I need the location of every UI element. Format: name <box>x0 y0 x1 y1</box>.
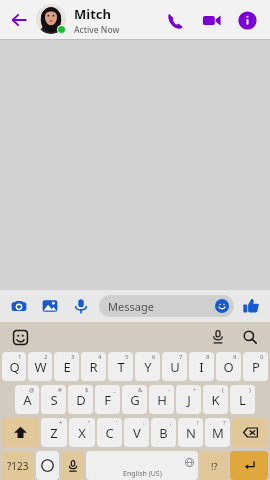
staticText: B <box>159 424 168 442</box>
staticText: ' <box>116 419 118 427</box>
button[interactable]: E <box>54 352 79 381</box>
staticText: 8 <box>206 353 210 361</box>
staticText: 1 <box>18 353 22 361</box>
staticText: ? <box>223 419 226 427</box>
staticText: ) <box>249 386 251 394</box>
staticText: X <box>78 424 86 442</box>
staticText: " <box>88 419 91 427</box>
button[interactable]: L <box>230 385 255 414</box>
button[interactable]: Shift <box>2 418 39 447</box>
staticText: T <box>117 358 125 376</box>
staticText: I <box>199 358 204 376</box>
staticText: + <box>193 386 197 394</box>
button[interactable]: G <box>122 385 147 414</box>
button[interactable]: S <box>41 385 66 414</box>
button[interactable]: Voice message <box>69 294 93 318</box>
button[interactable]: Profile photo <box>36 4 68 36</box>
button[interactable]: Info <box>232 5 262 35</box>
staticText: - <box>168 386 170 394</box>
button[interactable]: N <box>178 418 203 447</box>
staticText: 6 <box>152 353 156 361</box>
button[interactable]: C <box>97 418 122 447</box>
button[interactable]: Call <box>160 5 190 35</box>
staticText: 4 <box>98 353 102 361</box>
button[interactable]: H <box>149 385 174 414</box>
staticText: ( <box>222 386 224 394</box>
button[interactable]: J <box>176 385 201 414</box>
button[interactable]: T <box>108 352 133 381</box>
staticText: ! <box>197 419 199 427</box>
button[interactable]: Q <box>2 352 26 381</box>
button[interactable]: Stickers <box>9 326 31 348</box>
button[interactable]: !? <box>200 451 228 480</box>
button[interactable]: Camera <box>7 294 31 318</box>
staticText: R <box>89 358 98 376</box>
button[interactable]: B <box>151 418 176 447</box>
button[interactable]: Message <box>99 295 234 317</box>
button[interactable]: Gallery <box>38 294 62 318</box>
staticText: Q <box>9 358 20 376</box>
staticText: ; <box>170 419 172 427</box>
button[interactable]: D <box>68 385 93 414</box>
staticText: F <box>104 391 111 409</box>
button[interactable]: U <box>162 352 187 381</box>
staticText: U <box>170 358 180 376</box>
button[interactable]: I <box>189 352 214 381</box>
button[interactable]: P <box>243 352 268 381</box>
button[interactable]: Like <box>239 294 263 318</box>
staticText: C <box>105 424 114 442</box>
button[interactable]: Back <box>6 7 32 33</box>
staticText: O <box>223 358 234 376</box>
staticText: D <box>76 391 86 409</box>
staticText: S <box>50 391 58 409</box>
button[interactable]: R <box>81 352 106 381</box>
button[interactable]: Y <box>135 352 160 381</box>
staticText: & <box>138 386 143 394</box>
staticText: English (US) <box>123 469 162 479</box>
staticText: G <box>130 391 140 409</box>
button[interactable]: V <box>124 418 149 447</box>
button[interactable]: Emoji <box>36 451 59 480</box>
staticText: Z <box>50 424 58 442</box>
button[interactable]: Mitch <box>74 5 160 36</box>
staticText: A <box>23 391 32 409</box>
button[interactable]: Send <box>230 451 268 480</box>
button[interactable]: K <box>203 385 228 414</box>
staticText: _ <box>113 386 116 394</box>
button[interactable]: A <box>15 385 39 414</box>
staticText: @ <box>29 386 35 394</box>
staticText: Mitch <box>74 5 111 23</box>
staticText: P <box>252 358 260 376</box>
staticText: H <box>157 391 167 409</box>
button[interactable]: ?123 <box>2 451 34 480</box>
staticText: * <box>59 419 63 427</box>
button[interactable]: W <box>28 352 52 381</box>
staticText: M <box>212 424 224 442</box>
staticText: Active Now <box>74 24 120 36</box>
staticText: Message <box>108 299 154 314</box>
staticText: J <box>187 391 191 409</box>
staticText: 0 <box>260 353 264 361</box>
staticText: 2 <box>44 353 48 361</box>
button[interactable]: Voice typing <box>61 451 84 480</box>
button[interactable]: Space <box>86 451 198 480</box>
button[interactable]: O <box>216 352 241 381</box>
staticText: 9 <box>233 353 237 361</box>
button[interactable]: M <box>205 418 230 447</box>
button[interactable]: X <box>69 418 95 447</box>
staticText: N <box>186 424 196 442</box>
button[interactable]: Voice input <box>207 326 229 348</box>
button[interactable]: Video call <box>196 5 226 35</box>
staticText: E <box>63 358 71 376</box>
button[interactable]: F <box>95 385 120 414</box>
button[interactable]: Backspace <box>232 418 268 447</box>
button[interactable]: Z <box>41 418 67 447</box>
staticText: : <box>143 419 145 427</box>
staticText: L <box>239 391 246 409</box>
staticText: W <box>34 358 47 376</box>
staticText: 3 <box>71 353 75 361</box>
staticText: Y <box>144 358 152 376</box>
staticText: K <box>211 391 220 409</box>
button[interactable]: Search <box>239 326 261 348</box>
staticText: !? <box>211 460 218 472</box>
